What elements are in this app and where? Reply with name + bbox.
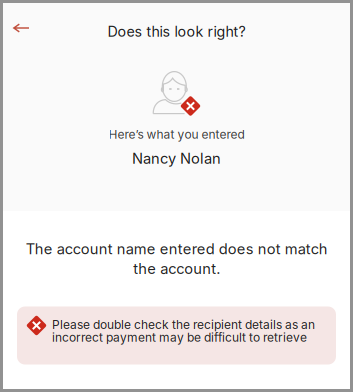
staticText: Here’s what you entered bbox=[108, 127, 244, 141]
staticText: The account name entered does not match … bbox=[25, 240, 327, 277]
staticText: Nancy Nolan bbox=[132, 149, 221, 167]
button[interactable]: Back bbox=[3, 16, 43, 47]
staticText: Please double check the recipient detail… bbox=[52, 317, 315, 344]
staticText: Does this look right? bbox=[107, 23, 245, 40]
